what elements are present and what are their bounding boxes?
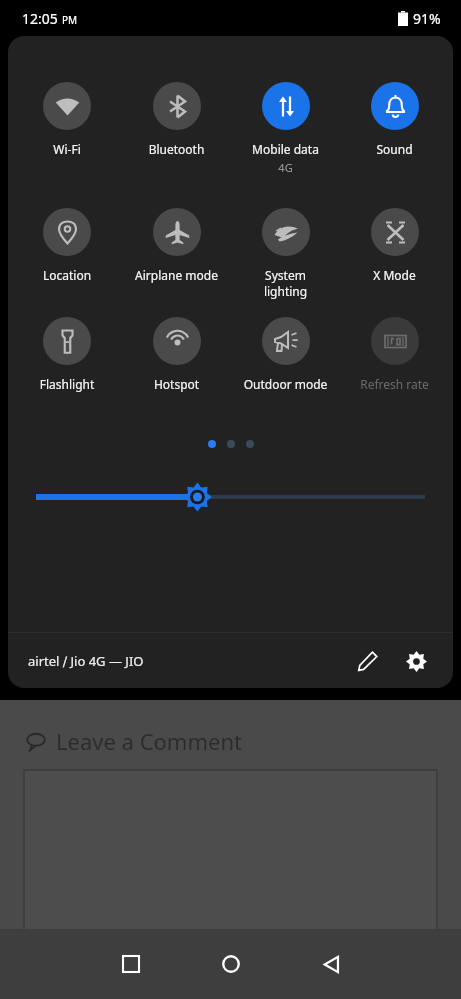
staticText: Hotspot bbox=[122, 376, 231, 392]
staticText: Leave a Comment bbox=[56, 726, 242, 756]
staticText: Refresh rate bbox=[340, 376, 449, 392]
button[interactable]: Sound bbox=[340, 82, 449, 157]
other: Flashlight bbox=[43, 317, 91, 365]
other: Airplane mode bbox=[153, 208, 201, 256]
button[interactable]: Airplane mode bbox=[122, 208, 231, 283]
button[interactable]: Outdoor mode bbox=[231, 317, 340, 392]
button[interactable]: Location bbox=[12, 208, 122, 283]
other: Wi-Fi bbox=[43, 82, 91, 130]
other: Sound bbox=[371, 82, 419, 130]
button[interactable]: Bluetooth bbox=[122, 82, 231, 157]
button[interactable]: Refresh rate bbox=[340, 317, 449, 392]
button[interactable]: Home bbox=[199, 932, 263, 996]
staticText: Location bbox=[12, 267, 122, 283]
staticText: Mobile data bbox=[231, 141, 340, 157]
other: Mobile data bbox=[262, 82, 310, 130]
button[interactable]: Edit tiles bbox=[347, 640, 389, 682]
other: System lighting bbox=[262, 208, 310, 256]
button[interactable]: Brightness bbox=[36, 481, 425, 513]
other: Outdoor mode bbox=[262, 317, 310, 365]
staticText: PM bbox=[62, 13, 78, 27]
other: Bluetooth bbox=[153, 82, 201, 130]
staticText: X Mode bbox=[340, 267, 449, 283]
staticText: 91% bbox=[413, 9, 441, 28]
button[interactable]: Settings bbox=[395, 640, 437, 682]
staticText: Airplane mode bbox=[122, 267, 231, 283]
staticText: Outdoor mode bbox=[231, 376, 340, 392]
button[interactable]: Flashlight bbox=[12, 317, 122, 392]
button[interactable]: System lighting bbox=[231, 208, 340, 299]
other: Refresh rate bbox=[371, 317, 419, 365]
button[interactable]: Mobile data bbox=[231, 82, 340, 175]
staticText: 4G bbox=[231, 160, 340, 175]
button[interactable]: X Mode bbox=[340, 208, 449, 283]
staticText: Sound bbox=[340, 141, 449, 157]
staticText: System lighting bbox=[231, 267, 340, 299]
staticText: Flashlight bbox=[12, 376, 122, 392]
staticText: Bluetooth bbox=[122, 141, 231, 157]
staticText: 12:05 bbox=[22, 9, 58, 28]
other: Hotspot bbox=[153, 317, 201, 365]
other: Location bbox=[43, 208, 91, 256]
staticText: airtel ∕ Jio 4G — JIO bbox=[28, 652, 144, 670]
staticText: Wi-Fi bbox=[12, 141, 122, 157]
button[interactable]: Wi-Fi bbox=[12, 82, 122, 157]
button[interactable]: Back bbox=[299, 932, 363, 996]
button[interactable]: Hotspot bbox=[122, 317, 231, 392]
other: X Mode bbox=[371, 208, 419, 256]
button[interactable]: Recents bbox=[99, 932, 163, 996]
